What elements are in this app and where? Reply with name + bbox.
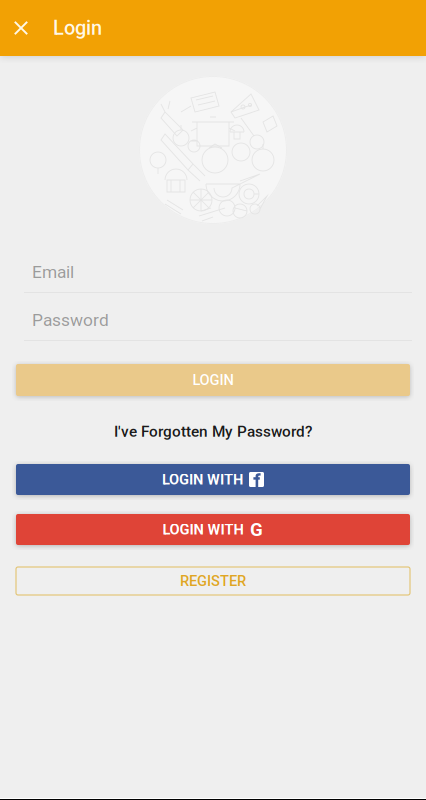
button[interactable]: LOGIN WITH	[16, 464, 410, 495]
staticText: LOGIN	[192, 371, 233, 389]
staticText: REGISTER	[180, 572, 246, 590]
button[interactable]: LOGIN WITH	[16, 514, 410, 545]
staticText: Login	[53, 16, 102, 40]
button[interactable]: Login	[42, 0, 113, 56]
button[interactable]: I've Forgotten My Password?	[16, 423, 410, 440]
staticText: LOGIN WITH	[162, 521, 243, 538]
button[interactable]: Close	[0, 0, 42, 56]
button[interactable]: LOGIN	[16, 364, 410, 396]
staticText: Password	[32, 310, 109, 330]
button[interactable]: REGISTER	[16, 567, 410, 595]
staticText: G	[250, 519, 263, 540]
staticText: LOGIN WITH	[162, 471, 243, 488]
staticText: Email	[32, 262, 74, 282]
staticText: I've Forgotten My Password?	[114, 422, 312, 440]
